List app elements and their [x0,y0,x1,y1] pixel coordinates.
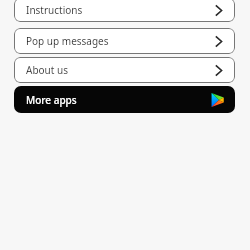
button[interactable]: More apps [14,86,235,113]
button[interactable]: Pop up messages [14,28,235,54]
staticText: Instructions [26,3,209,17]
button[interactable]: Instructions [14,0,235,22]
other: Open Google Play store [208,91,226,109]
staticText: More apps [26,93,208,107]
staticText: Pop up messages [26,34,209,48]
button[interactable]: About us [14,57,235,83]
staticText: About us [26,63,209,77]
